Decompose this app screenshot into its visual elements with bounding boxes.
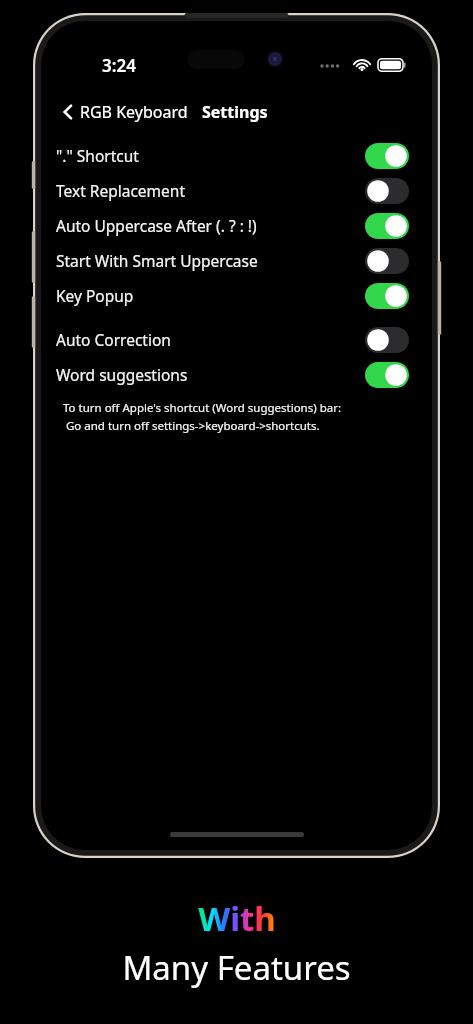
staticText: 3:24 [102, 54, 136, 77]
button[interactable]: RGB Keyboard [59, 93, 190, 131]
button[interactable]: "." Shortcut [41, 138, 432, 173]
button[interactable]: Auto Uppercase After (. ? : !) [41, 208, 432, 243]
staticText: Auto Correction [56, 329, 171, 350]
staticText: Many Features [122, 945, 351, 990]
staticText: RGB Keyboard [80, 101, 188, 123]
button[interactable]: Auto Correction [41, 322, 432, 357]
staticText: Word suggestions [56, 364, 188, 385]
staticText: Key Popup [56, 285, 134, 306]
staticText: With [198, 896, 276, 941]
button[interactable]: Text Replacement [41, 173, 432, 208]
staticText: Settings [202, 101, 268, 123]
staticText: Text Replacement [56, 180, 185, 201]
button[interactable]: Word suggestions [41, 357, 432, 392]
staticText: Go and turn off settings->keyboard->shor… [63, 418, 320, 434]
staticText: "." Shortcut [56, 145, 139, 166]
staticText: Auto Uppercase After (. ? : !) [56, 215, 257, 236]
staticText: Start With Smart Uppercase [56, 250, 258, 271]
button[interactable]: Key Popup [41, 278, 432, 313]
staticText: To turn off Apple's shortcut (Word sugge… [63, 400, 342, 416]
button[interactable]: Start With Smart Uppercase [41, 243, 432, 278]
